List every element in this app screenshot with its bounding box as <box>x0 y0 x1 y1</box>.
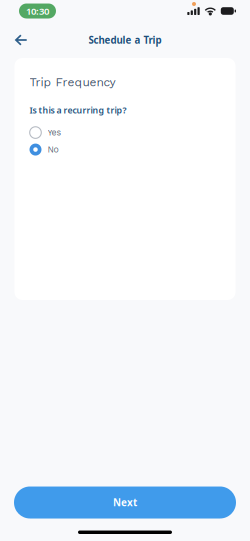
staticText: Schedule a Trip <box>88 33 161 47</box>
staticText: Is this a recurring trip? <box>29 104 126 116</box>
staticText: Yes <box>47 127 61 138</box>
button[interactable]: Back <box>7 27 35 53</box>
staticText: Trip Frequency <box>29 75 115 89</box>
staticText: Next <box>113 496 137 509</box>
button[interactable]: Next <box>14 486 236 518</box>
button[interactable]: No <box>29 141 220 158</box>
button[interactable]: Yes <box>29 124 220 141</box>
staticText: No <box>47 144 58 155</box>
staticText: 10:30 <box>26 4 49 18</box>
